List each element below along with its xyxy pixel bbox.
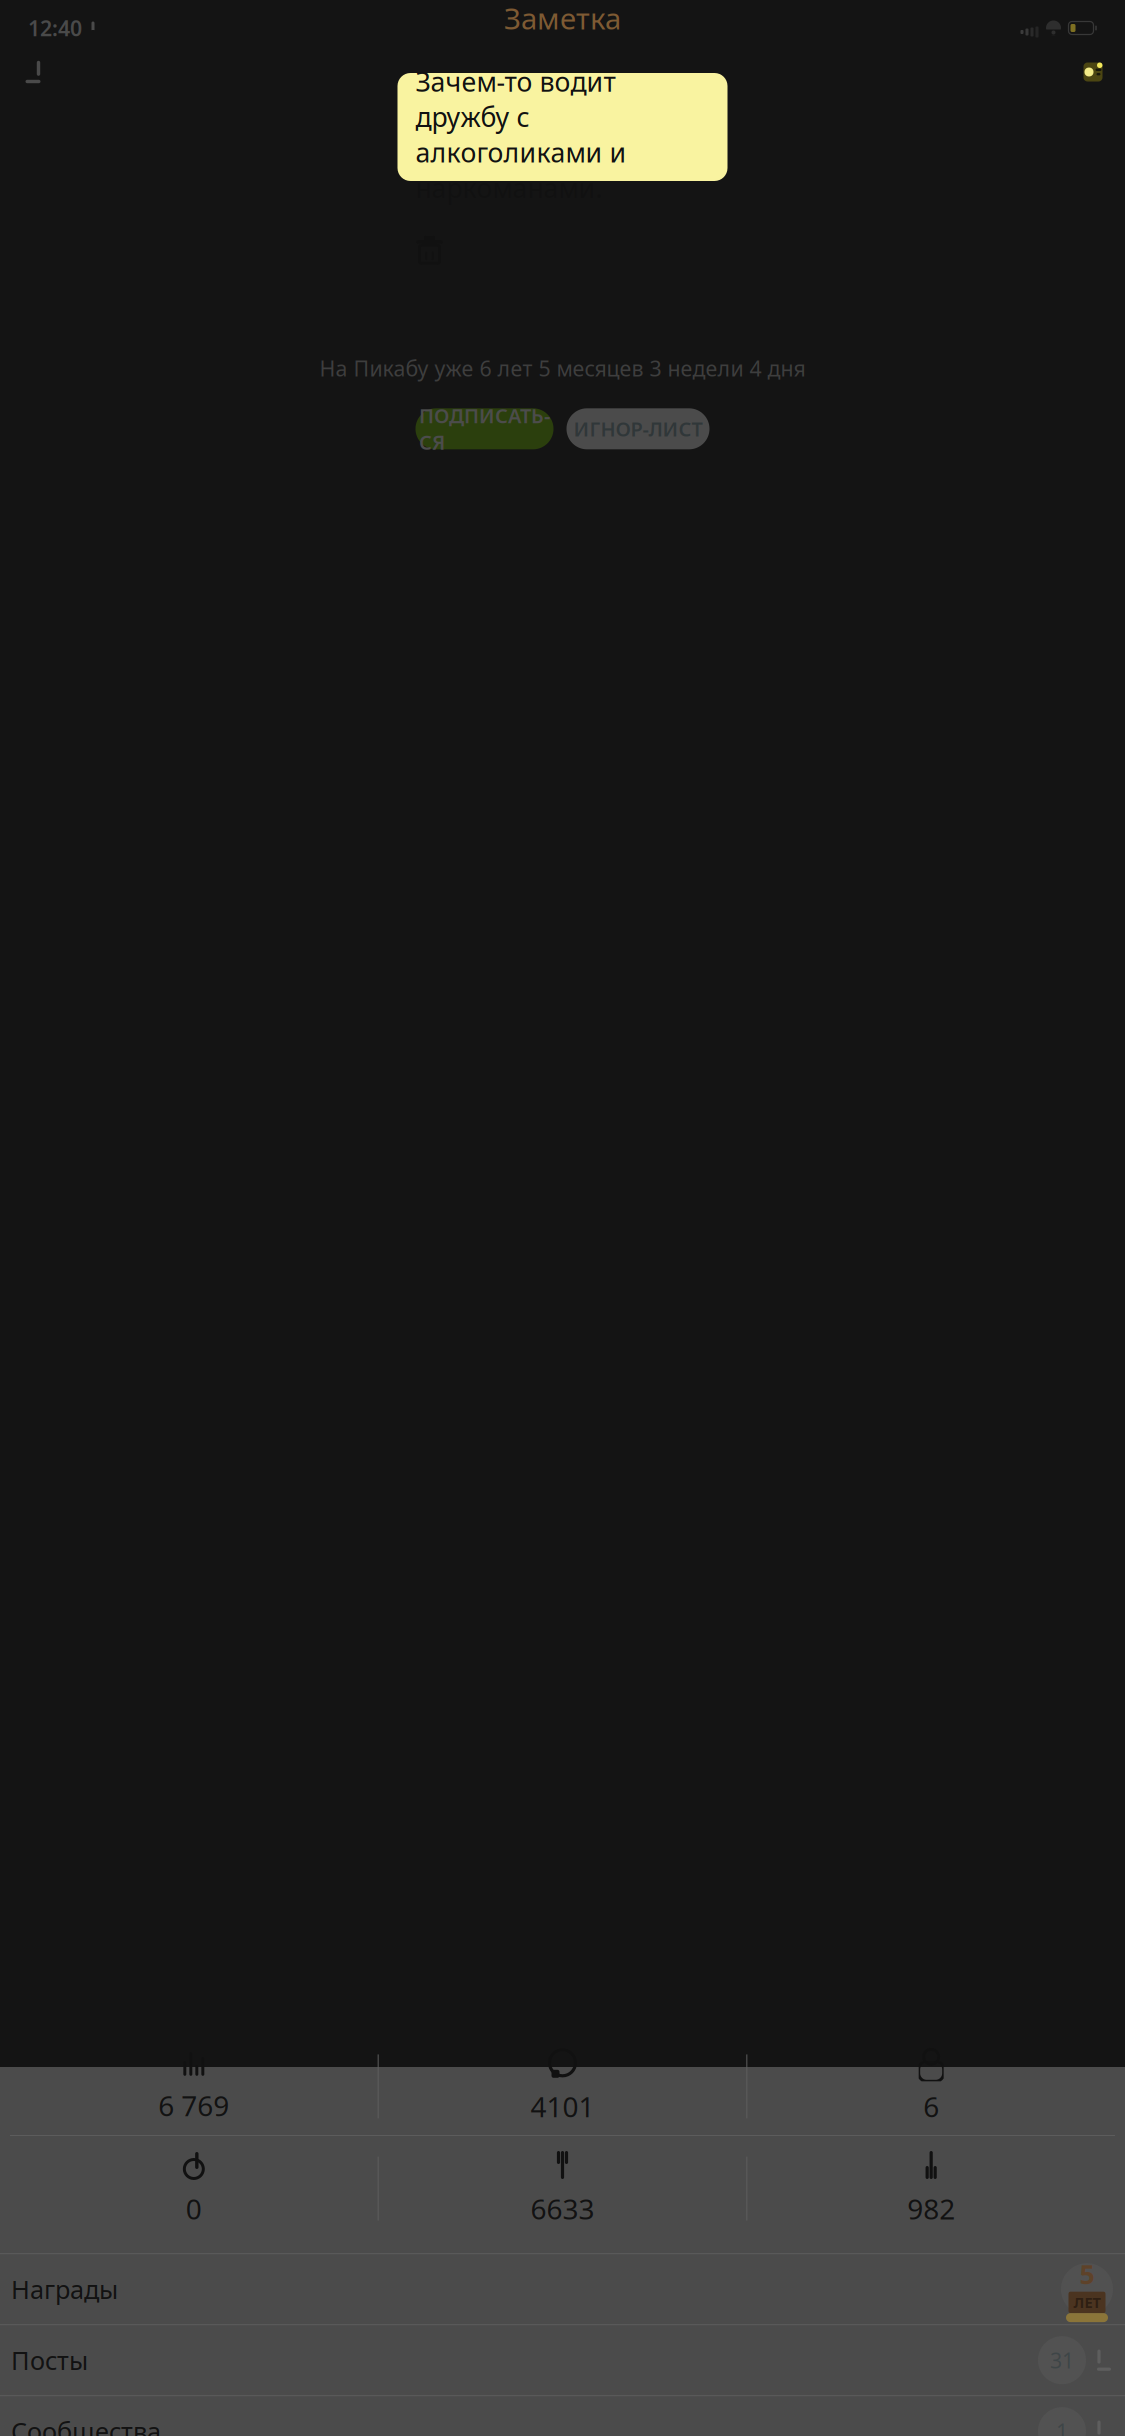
staticText: 6633 xyxy=(530,2190,594,2227)
button[interactable]: Hot xyxy=(10,2144,378,2233)
button[interactable]: Сообщества xyxy=(0,2396,1125,2436)
button[interactable]: Посты xyxy=(0,2325,1125,2395)
button[interactable]: Comments xyxy=(379,2042,746,2131)
staticText: 5 xyxy=(1079,2256,1094,2292)
button[interactable]: Back xyxy=(10,50,56,94)
staticText: Сообщества xyxy=(11,2414,161,2436)
staticText: 12:40 xyxy=(28,14,82,42)
staticText: ЛЕТ xyxy=(1073,2293,1100,2312)
button[interactable]: Награды xyxy=(0,2254,1125,2324)
staticText: ПОДПИСАТЬСЯ xyxy=(419,402,550,455)
staticText: 31 xyxy=(1050,2346,1074,2374)
button[interactable]: Subscribers xyxy=(747,2042,1115,2131)
button[interactable]: ИГНОР-ЛИСТ xyxy=(566,408,709,449)
staticText: 982 xyxy=(907,2190,955,2227)
staticText: 6 769 xyxy=(158,2087,229,2124)
button[interactable]: Rating xyxy=(10,2043,378,2130)
staticText: Награды xyxy=(11,2272,118,2306)
staticText: 6 xyxy=(923,2088,939,2125)
staticText: Заметка xyxy=(504,0,621,38)
button[interactable]: Profile xyxy=(1071,50,1115,94)
staticText: 1 xyxy=(1056,2417,1068,2436)
staticText: Зачем-то водит дружбу с алкоголиками и н… xyxy=(415,64,626,205)
staticText: ИГНОР-ЛИСТ xyxy=(573,416,702,442)
button[interactable]: ПОДПИСАТЬСЯ xyxy=(415,408,553,449)
staticText: 4101 xyxy=(530,2088,594,2125)
button[interactable]: Upvotes xyxy=(379,2144,746,2233)
staticText: Посты xyxy=(11,2343,88,2377)
staticText: 0 xyxy=(186,2190,202,2227)
button[interactable]: Downvotes xyxy=(747,2144,1115,2233)
staticText: На Пикабу уже 6 лет 5 месяцев 3 недели 4… xyxy=(319,354,805,382)
